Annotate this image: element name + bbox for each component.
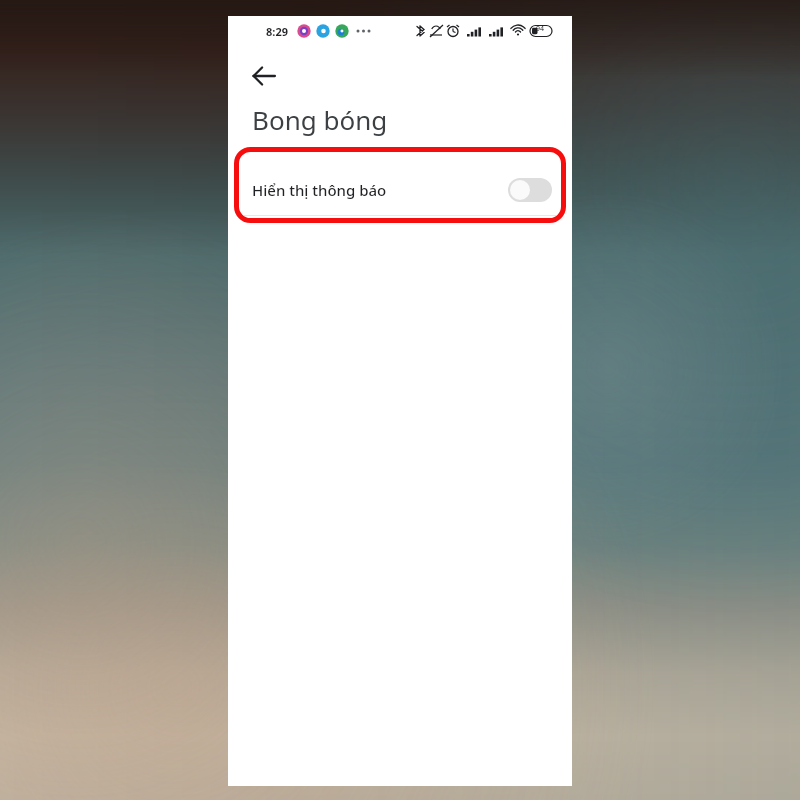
button[interactable]: Hiển thị thông báo toggle: [508, 178, 552, 202]
button[interactable]: Hiển thị thông báo: [228, 154, 572, 226]
button[interactable]: Back: [240, 52, 288, 100]
staticText: 8:29: [266, 24, 288, 39]
staticText: Bong bóng: [252, 102, 388, 137]
staticText: Hiển thị thông báo: [252, 180, 508, 200]
staticText: 94: [536, 24, 545, 34]
